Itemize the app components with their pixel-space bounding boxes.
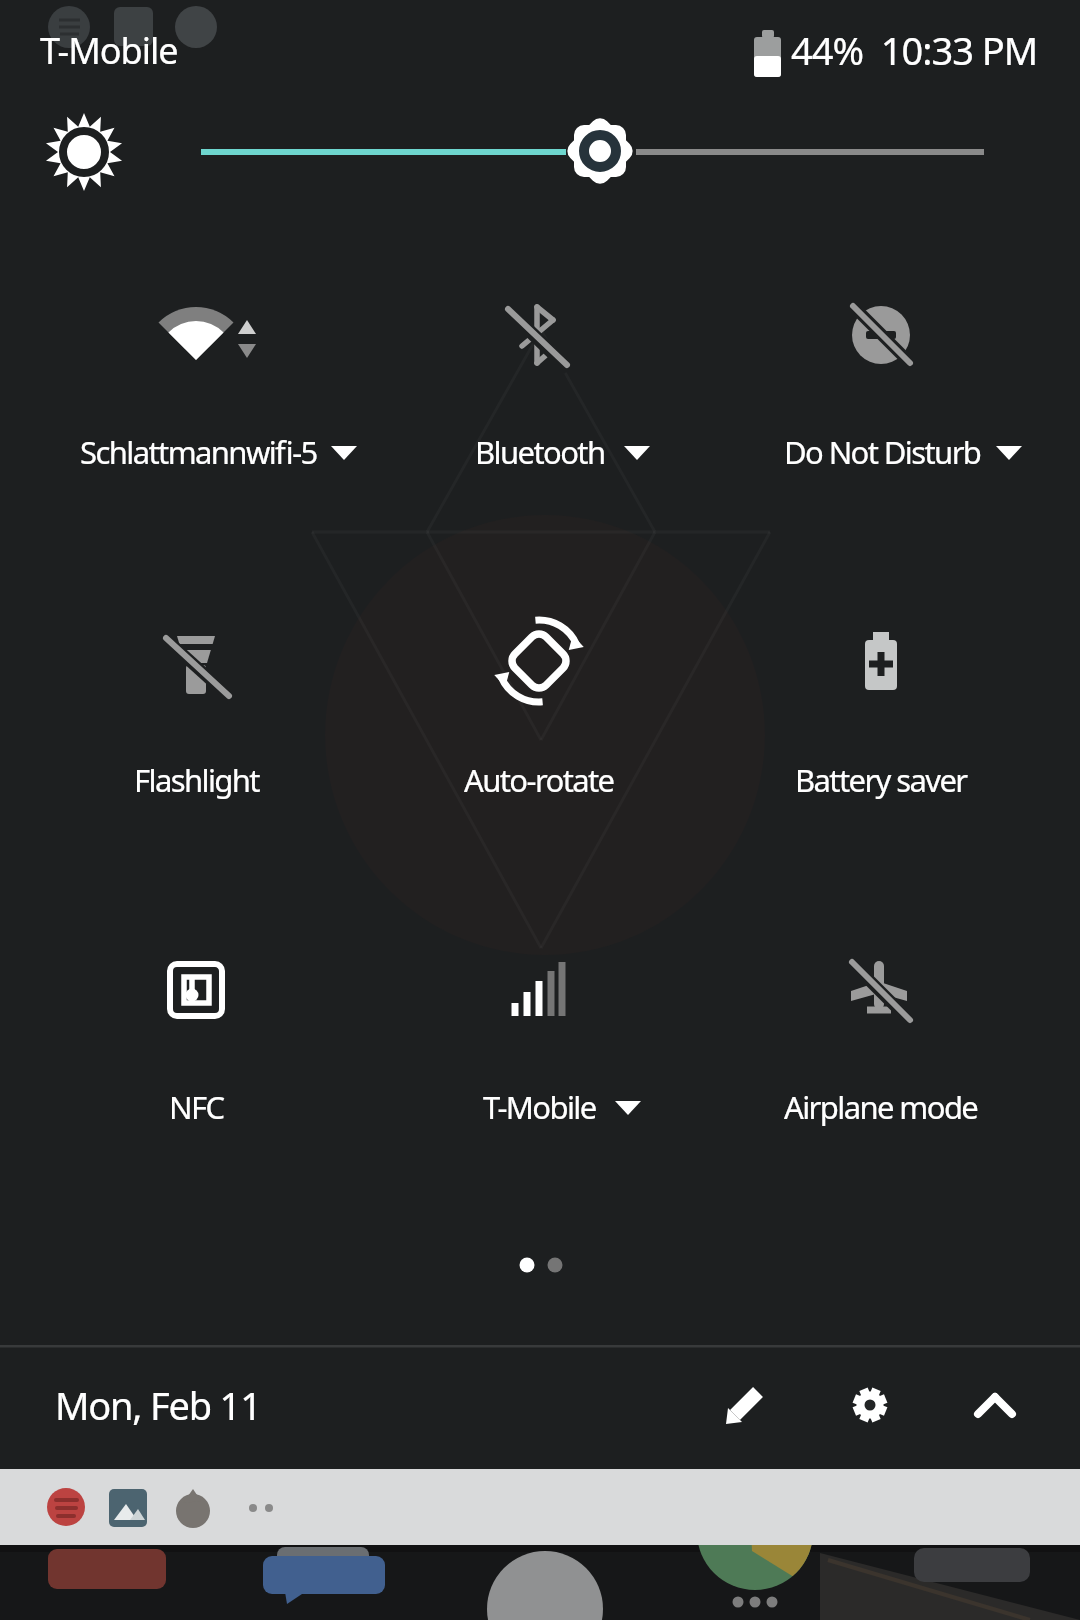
button[interactable] <box>0 1360 400 1450</box>
staticText: Auto-rotate <box>464 759 614 801</box>
button[interactable] <box>712 915 1052 1165</box>
button[interactable] <box>26 260 366 510</box>
button[interactable] <box>40 110 990 196</box>
staticText: Mon, Feb 11 <box>55 1379 261 1431</box>
button[interactable] <box>825 1360 915 1450</box>
button[interactable] <box>26 588 366 838</box>
button[interactable] <box>700 1360 790 1450</box>
button[interactable] <box>26 915 366 1165</box>
button[interactable] <box>950 1360 1040 1450</box>
button[interactable] <box>370 588 710 838</box>
staticText: T-Mobile <box>40 26 178 75</box>
button[interactable] <box>0 1470 1080 1538</box>
button[interactable] <box>712 260 1052 510</box>
staticText: NFC <box>169 1086 224 1128</box>
button[interactable] <box>712 588 1052 838</box>
button[interactable] <box>370 260 710 510</box>
staticText: Schlattmannwifi-5 <box>80 431 317 473</box>
staticText: 44% 10:33 PM <box>791 24 1038 72</box>
staticText: Battery saver <box>795 759 967 801</box>
staticText: Airplane mode <box>784 1086 978 1128</box>
staticText: Flashlight <box>134 759 259 801</box>
staticText: Do Not Disturb <box>784 431 981 473</box>
staticText: T-Mobile <box>483 1086 596 1128</box>
button[interactable] <box>370 915 710 1165</box>
staticText: Bluetooth <box>475 431 605 473</box>
